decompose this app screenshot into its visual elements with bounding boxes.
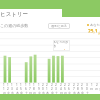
staticText: あなたの歩数: [53, 40, 70, 48]
staticText: 月: [95, 87, 98, 91]
staticText: 27: [73, 83, 76, 91]
staticText: 土: [55, 91, 58, 95]
staticText: 火: [68, 91, 71, 95]
staticText: 23: [55, 83, 58, 91]
staticText: 14: [16, 83, 19, 91]
staticText: 28: [77, 83, 80, 91]
staticText: 月: [33, 91, 36, 95]
staticText: 16: [25, 83, 28, 91]
staticText: 土: [25, 91, 28, 95]
staticText: 木: [16, 91, 19, 95]
staticText: 12: [7, 83, 10, 91]
staticText: 19: [38, 83, 41, 91]
staticText: 25: [64, 83, 67, 91]
staticText: あなたの合計: [90, 23, 100, 27]
staticText: 2: [96, 83, 98, 87]
staticText: 水: [42, 91, 45, 95]
staticText: 24: [60, 83, 63, 91]
staticText: 月: [64, 91, 67, 95]
staticText: 水: [73, 91, 76, 95]
staticText: 1: [91, 83, 93, 87]
staticText: 水: [11, 91, 14, 95]
staticText: 火: [99, 87, 100, 91]
button[interactable]: あなたの歩数: [53, 40, 70, 51]
staticText: 木: [46, 91, 49, 95]
staticText: 月: [3, 91, 6, 95]
staticText: 火: [38, 91, 41, 95]
staticText: 17: [29, 83, 32, 91]
staticText: 22: [51, 83, 54, 91]
staticText: 日: [90, 87, 93, 91]
staticText: 15: [20, 83, 23, 91]
staticText: 26: [68, 83, 71, 91]
staticText: 25,1: [88, 28, 98, 35]
staticText: km: [64, 49, 68, 51]
staticText: 週別に見る: [51, 24, 68, 28]
staticText: 13: [11, 83, 14, 91]
staticText: 金: [51, 91, 54, 95]
staticText: 30: [86, 83, 89, 91]
staticText: 金: [81, 91, 84, 95]
staticText: 20: [42, 83, 45, 91]
staticText: 歩: [98, 31, 100, 35]
staticText: 土: [86, 91, 89, 95]
staticText: 日: [60, 91, 63, 95]
staticText: 金: [20, 91, 23, 95]
staticText: 21: [46, 83, 49, 91]
button[interactable]: あなたの合計: [87, 23, 100, 27]
staticText: 日: [29, 91, 32, 95]
staticText: ヒストリー: [0, 11, 29, 18]
staticText: 18: [33, 83, 36, 91]
staticText: この週の総歩数: [0, 23, 29, 28]
button[interactable]: 週別に見る: [48, 23, 70, 29]
staticText: 火: [7, 91, 10, 95]
staticText: 11: [3, 83, 6, 91]
staticText: 24.1: [55, 49, 64, 51]
staticText: 木: [77, 91, 80, 95]
staticText: 29: [81, 83, 84, 91]
